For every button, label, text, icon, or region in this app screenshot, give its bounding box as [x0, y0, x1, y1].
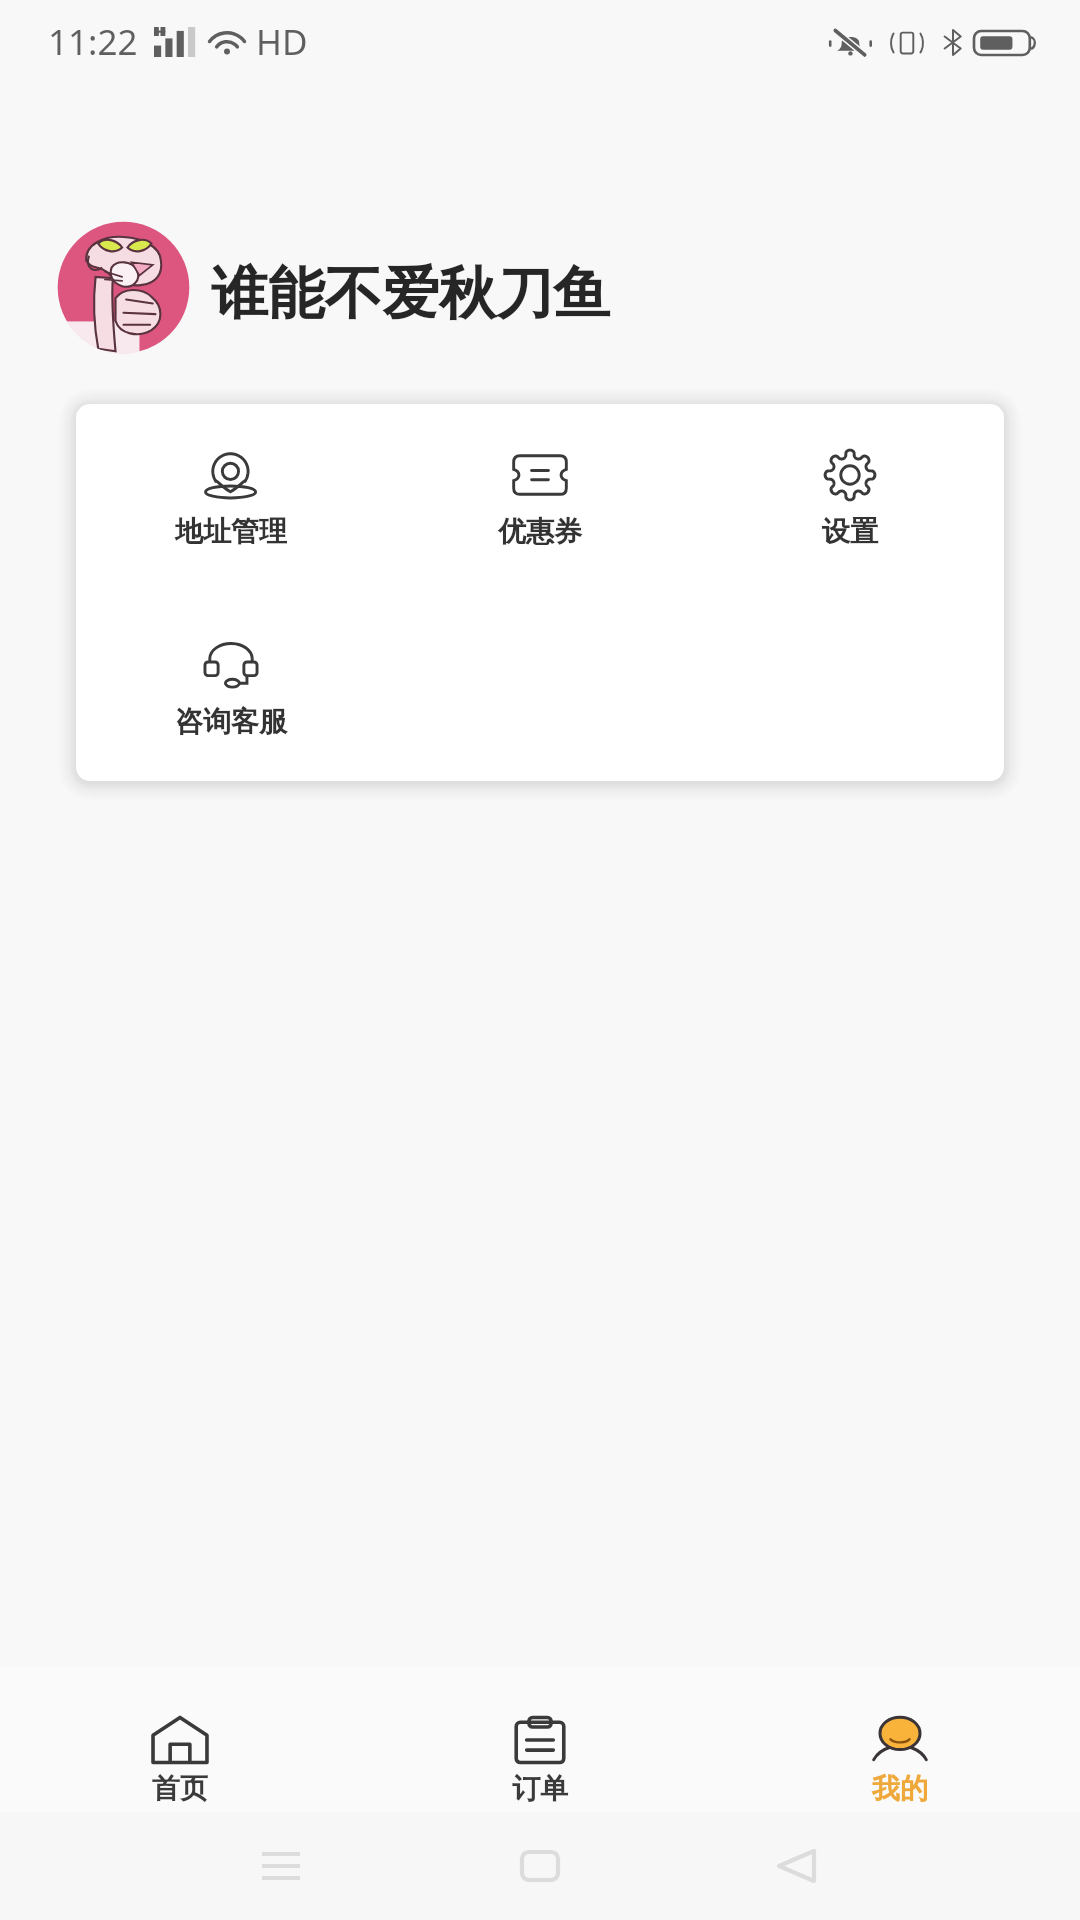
staticText: 订单: [512, 1771, 568, 1806]
button[interactable]: 地址管理: [76, 447, 385, 557]
button[interactable]: Recent apps: [245, 1831, 317, 1901]
button[interactable]: Home: [504, 1831, 576, 1901]
staticText: 咨询客服: [175, 704, 287, 739]
staticText: 地址管理: [175, 514, 287, 549]
button[interactable]: 我的: [720, 1666, 1080, 1806]
button[interactable]: 首页: [0, 1666, 360, 1806]
button[interactable]: Back: [761, 1831, 833, 1901]
button[interactable]: 订单: [360, 1666, 720, 1806]
staticText: 优惠券: [498, 514, 582, 549]
staticText: HD: [256, 18, 308, 66]
button[interactable]: Profile avatar: [57, 221, 190, 354]
staticText: 首页: [152, 1771, 208, 1806]
staticText: 谁能不爱秋刀鱼: [211, 258, 610, 330]
staticText: 设置: [822, 514, 878, 549]
button[interactable]: 优惠券: [385, 447, 694, 557]
staticText: 我的: [872, 1771, 928, 1806]
staticText: 11:22: [48, 18, 138, 66]
button[interactable]: 设置: [695, 447, 1004, 557]
button[interactable]: 咨询客服: [76, 637, 385, 747]
